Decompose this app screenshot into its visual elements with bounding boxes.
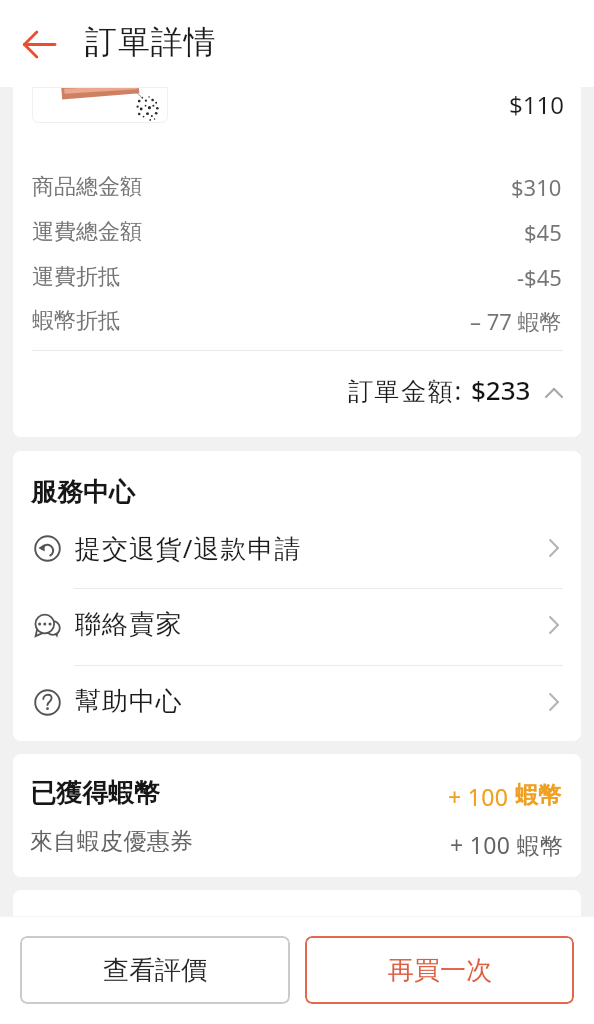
staticText: 幫助中心 bbox=[75, 685, 183, 718]
staticText: 再買一次 bbox=[388, 954, 492, 987]
staticText: 訂單詳情 bbox=[85, 22, 217, 62]
staticText: – 77 蝦幣 bbox=[470, 306, 562, 336]
button[interactable]: 查看評價 bbox=[20, 936, 290, 1004]
staticText: + 100 蝦幣 bbox=[450, 829, 564, 860]
staticText: 查看評價 bbox=[103, 954, 207, 987]
staticText: + 100 bbox=[448, 781, 515, 812]
staticText: 已獲得蝦幣 bbox=[30, 777, 160, 810]
staticText: 來自蝦皮優惠券 bbox=[30, 827, 194, 856]
staticText: $45 bbox=[524, 217, 562, 247]
staticText: 蝦幣折抵 bbox=[32, 307, 120, 335]
button[interactable]: Back bbox=[7, 12, 71, 76]
staticText: 蝦幣 bbox=[515, 781, 561, 810]
button[interactable]: 聯絡賣家 bbox=[13, 586, 581, 663]
button[interactable]: 再買一次 bbox=[305, 936, 574, 1004]
button[interactable]: 提交退貨/退款申請 bbox=[13, 509, 581, 586]
staticText: $233 bbox=[471, 372, 531, 407]
button[interactable]: 訂單金額: bbox=[13, 348, 581, 431]
staticText: $310 bbox=[511, 172, 562, 202]
staticText: 服務中心 bbox=[31, 476, 135, 509]
staticText: 運費折抵 bbox=[32, 263, 120, 291]
staticText: 運費總金額 bbox=[32, 218, 142, 246]
staticText: 商品總金額 bbox=[32, 173, 142, 201]
staticText: 聯絡賣家 bbox=[75, 608, 183, 641]
button[interactable]: 幫助中心 bbox=[13, 663, 581, 740]
staticText: $110 bbox=[509, 88, 564, 121]
staticText: 訂單金額: bbox=[348, 373, 471, 407]
staticText: 提交退貨/退款申請 bbox=[75, 530, 302, 566]
staticText: -$45 bbox=[517, 262, 562, 292]
